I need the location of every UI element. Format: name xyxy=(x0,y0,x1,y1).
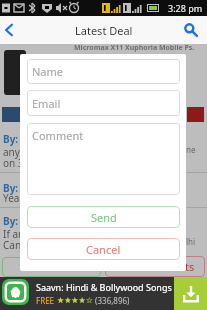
button[interactable]: Send xyxy=(27,206,180,228)
button[interactable] xyxy=(2,257,101,277)
staticText: By: xyxy=(3,181,19,195)
staticText: Email xyxy=(32,96,61,111)
staticText: By: xyxy=(3,214,19,228)
button[interactable]: Install xyxy=(174,277,207,310)
staticText: Can xyxy=(3,238,22,252)
staticText: Saavn: Hindi & Bollywood Songs xyxy=(36,281,172,293)
button[interactable]: Back xyxy=(0,16,18,44)
button[interactable]: Email xyxy=(27,90,180,116)
staticText: lhi xyxy=(186,236,196,247)
staticText: ★★★★☆ xyxy=(57,296,93,305)
staticText: By: xyxy=(3,132,19,146)
staticText: 3:28 pm xyxy=(168,2,203,14)
staticText: Micromax X11 Xuphoria Mobile Ps. xyxy=(74,43,195,53)
staticText: ne xyxy=(186,144,196,155)
staticText: Send xyxy=(91,210,117,225)
staticText: Comment xyxy=(32,128,84,143)
staticText: If an xyxy=(3,227,25,241)
button[interactable]: Search xyxy=(174,16,207,44)
staticText: Yea xyxy=(3,191,20,205)
staticText: on 3 xyxy=(3,156,24,170)
button[interactable]: Cancel xyxy=(27,238,180,260)
staticText: any xyxy=(3,145,20,159)
button[interactable] xyxy=(105,256,205,277)
staticText: Name xyxy=(32,64,64,79)
button[interactable]: Comment xyxy=(27,123,180,195)
staticText: Cancel xyxy=(86,242,121,257)
staticText: FREE xyxy=(36,295,57,306)
staticText: Post Your Comments xyxy=(86,259,195,274)
button[interactable]: Name xyxy=(27,59,180,84)
staticText: (336,896) xyxy=(93,295,130,306)
staticText: Latest Deal xyxy=(75,23,133,38)
